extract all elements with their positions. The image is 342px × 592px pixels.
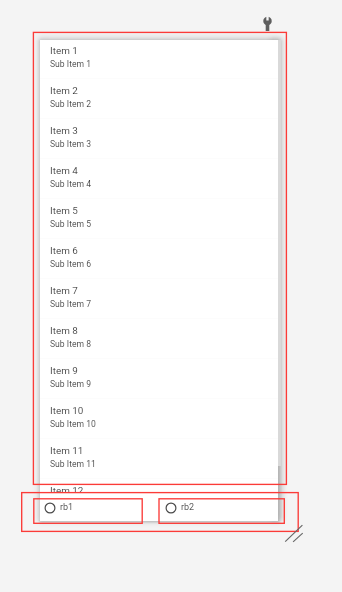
staticText: Sub Item 6 — [50, 259, 92, 269]
staticText: Sub Item 5 — [50, 219, 92, 229]
staticText: Sub Item 10 — [50, 419, 96, 429]
staticText: Item 9 — [50, 365, 78, 377]
staticText: Sub Item 11 — [50, 459, 96, 469]
staticText: Item 10 — [50, 405, 84, 417]
button[interactable]: Item 6 — [40, 240, 278, 280]
staticText: Sub Item 4 — [50, 179, 92, 189]
staticText: Sub Item 1 — [50, 59, 92, 69]
staticText: Sub Item 2 — [50, 99, 92, 109]
staticText: Item 4 — [50, 165, 78, 177]
staticText: Item 7 — [50, 285, 78, 297]
button[interactable]: Item 7 — [40, 280, 278, 320]
staticText: Sub Item 9 — [50, 379, 92, 389]
staticText: rb1 — [60, 502, 74, 513]
button[interactable]: rb1 — [40, 497, 142, 518]
button[interactable]: Item 3 — [40, 120, 278, 160]
button[interactable]: Item 10 — [40, 400, 278, 440]
staticText: Item 8 — [50, 325, 78, 337]
staticText: Sub Item 3 — [50, 139, 92, 149]
staticText: Sub Item 8 — [50, 339, 92, 349]
staticText: Item 1 — [50, 45, 78, 57]
button[interactable]: Item 1 — [40, 40, 278, 80]
button[interactable]: Item 8 — [40, 320, 278, 360]
staticText: rb2 — [181, 502, 195, 513]
button[interactable]: Item 2 — [40, 80, 278, 120]
staticText: Sub Item 7 — [50, 299, 92, 309]
staticText: Item 5 — [50, 205, 78, 217]
staticText: Item 2 — [50, 85, 78, 97]
button[interactable]: Item 11 — [40, 440, 278, 480]
button[interactable]: rb2 — [161, 497, 277, 518]
button[interactable]: Item 5 — [40, 200, 278, 240]
button[interactable]: Item 4 — [40, 160, 278, 200]
staticText: Item 6 — [50, 245, 78, 257]
button[interactable]: Build — [263, 16, 272, 31]
staticText: Item 3 — [50, 125, 78, 137]
staticText: Item 12 — [50, 485, 84, 493]
button[interactable]: Item 12 — [40, 480, 278, 493]
staticText: Item 11 — [50, 445, 84, 457]
button[interactable]: Item 9 — [40, 360, 278, 400]
